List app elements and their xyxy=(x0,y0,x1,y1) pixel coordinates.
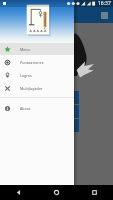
button[interactable]: Puntuaciones xyxy=(0,56,74,68)
button[interactable]: Home xyxy=(37,185,75,200)
button[interactable]: Letter key xyxy=(74,91,79,104)
button[interactable]: Back xyxy=(0,185,37,200)
staticText: Puntuaciones xyxy=(20,60,44,65)
staticText: About xyxy=(20,106,31,111)
button[interactable]: Recent apps xyxy=(75,185,113,200)
button[interactable]: Menu xyxy=(0,43,74,55)
button[interactable]: About xyxy=(0,102,74,114)
staticText: Menu xyxy=(20,47,30,52)
staticText: MultiJugador xyxy=(20,86,43,91)
button[interactable]: MultiJugador xyxy=(0,82,74,94)
staticText: 16:37 xyxy=(98,0,111,7)
button[interactable]: Letter key xyxy=(74,119,79,132)
button[interactable]: Letter key xyxy=(74,105,79,118)
staticText: Logros xyxy=(20,73,32,78)
button[interactable]: Logros xyxy=(0,69,74,81)
